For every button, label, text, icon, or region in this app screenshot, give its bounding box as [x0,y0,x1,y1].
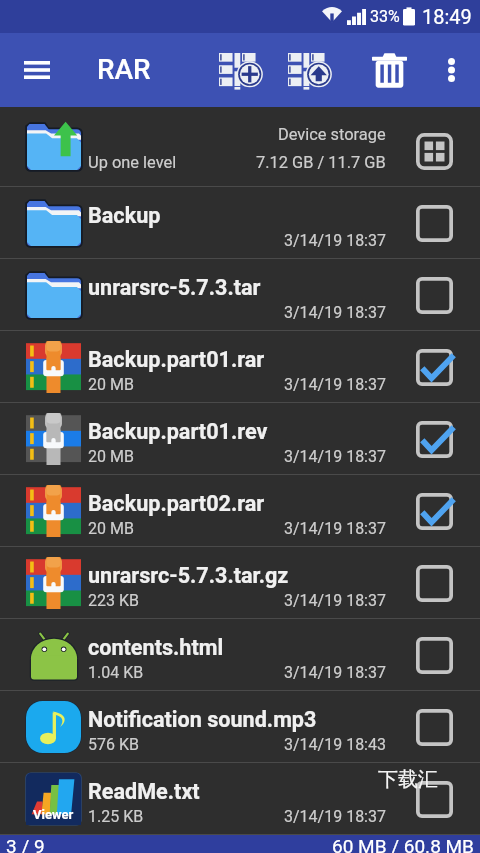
staticText: Backup.part02.rar [88,491,265,516]
button[interactable]: Select item [415,276,453,314]
staticText: Up one level [88,153,177,172]
button[interactable]: Select item [415,348,453,386]
staticText: 3/14/19 18:43 [284,735,386,754]
staticText: 3/14/19 18:37 [284,519,386,538]
button[interactable]: Select item [415,492,453,530]
button[interactable]: Backup.part01.rev [0,403,480,474]
staticText: 3/14/19 18:37 [284,663,386,682]
staticText: 20 MB [88,375,134,394]
staticText: Notification sound.mp3 [88,707,317,732]
staticText: 3/14/19 18:37 [284,447,386,466]
button[interactable]: unrarsrc-5.7.3.tar [0,259,480,330]
button[interactable]: Delete [361,46,417,94]
button[interactable]: Change view [415,132,453,170]
staticText: ReadMe.txt [88,779,200,804]
button[interactable]: Select item [415,780,453,818]
staticText: 3/14/19 18:37 [284,807,386,826]
button[interactable]: contents.html [0,619,480,690]
staticText: 18:49 [422,5,472,28]
staticText: 576 KB [88,735,139,754]
staticText: Viewer [33,807,74,822]
button[interactable]: Extract [280,46,338,94]
button[interactable]: Up one level [0,107,480,186]
staticText: contents.html [88,635,224,660]
button[interactable]: Viewer [0,763,480,834]
button[interactable]: Select item [415,420,453,458]
button[interactable]: Backup.part02.rar [0,475,480,546]
staticText: 60 MB / 60.8 MB [332,835,474,853]
staticText: 3/14/19 18:37 [284,303,386,322]
staticText: 下载汇 [378,767,438,792]
button[interactable]: Select item [415,204,453,242]
staticText: 20 MB [88,447,134,466]
staticText: 1.25 KB [88,807,144,826]
staticText: 3/14/19 18:37 [284,231,386,250]
button[interactable]: Menu [7,40,67,100]
button[interactable]: unrarsrc-5.7.3.tar.gz [0,547,480,618]
staticText: Backup.part01.rar [88,347,265,372]
staticText: 7.12 GB / 11.7 GB [256,153,386,172]
button[interactable]: Select item [415,564,453,602]
staticText: unrarsrc-5.7.3.tar.gz [88,563,289,588]
button[interactable]: Backup.part01.rar [0,331,480,402]
staticText: 3 / 9 [6,835,45,853]
staticText: Backup.part01.rev [88,419,268,444]
staticText: RAR [97,53,151,86]
staticText: unrarsrc-5.7.3.tar [88,275,261,300]
staticText: Device storage [278,125,386,144]
button[interactable]: More options [428,46,474,94]
button[interactable]: Backup [0,187,480,258]
staticText: 1.04 KB [88,663,144,682]
staticText: 20 MB [88,519,134,538]
button[interactable]: Notification sound.mp3 [0,691,480,762]
staticText: Backup [88,203,161,228]
button[interactable]: Select item [415,708,453,746]
button[interactable]: Add to archive [211,46,269,94]
staticText: 33% [370,7,400,26]
staticText: 3/14/19 18:37 [284,591,386,610]
staticText: 3/14/19 18:37 [284,375,386,394]
button[interactable]: Select item [415,636,453,674]
staticText: 223 KB [88,591,139,610]
